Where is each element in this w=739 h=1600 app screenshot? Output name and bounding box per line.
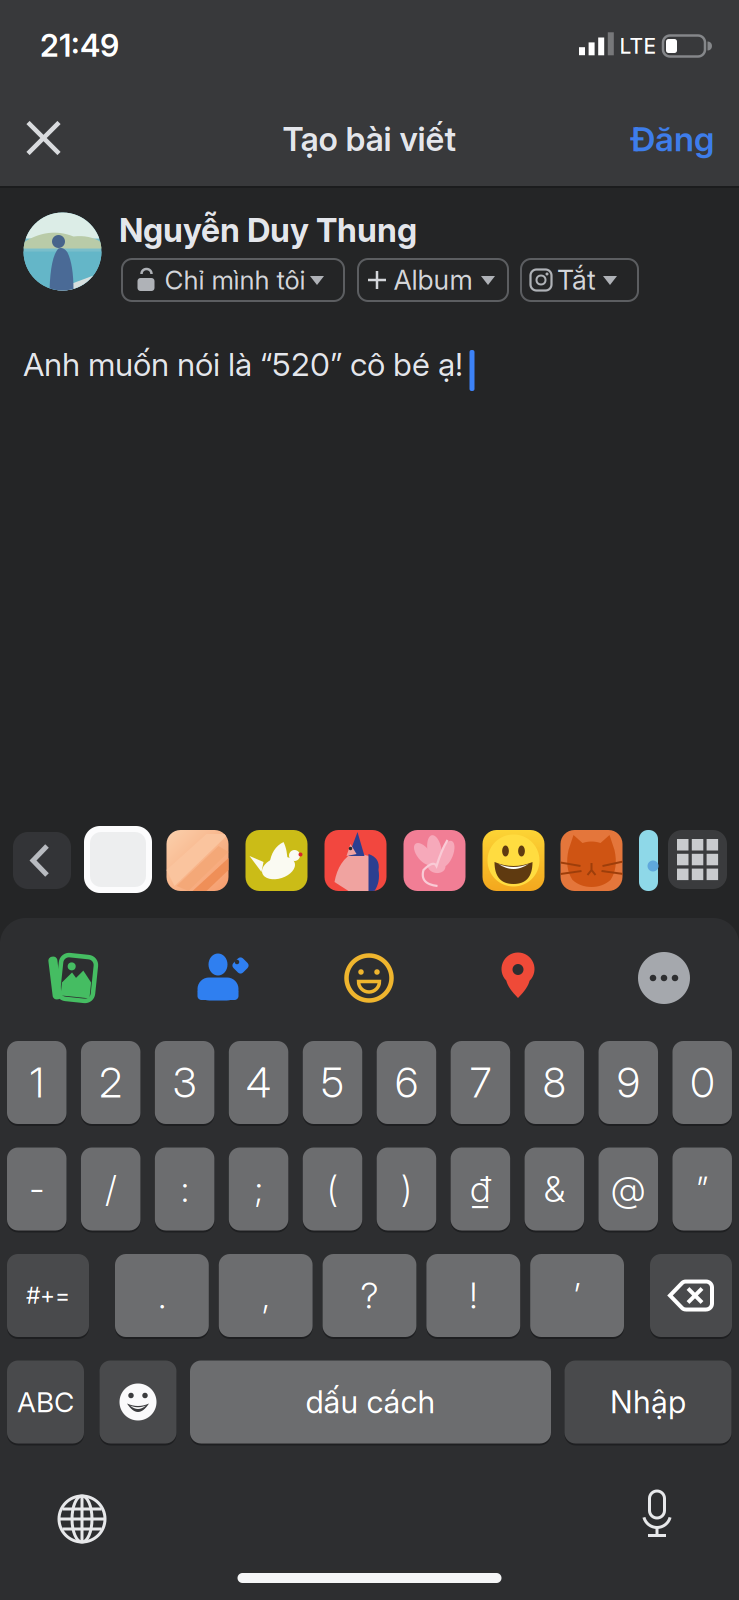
staticText: ₫ (470, 1167, 491, 1211)
button[interactable]: 3 (155, 1039, 214, 1125)
button[interactable]: . (115, 1252, 209, 1338)
button[interactable]: / (81, 1146, 140, 1232)
button[interactable]: ABC (7, 1359, 84, 1445)
button[interactable]: Feeling or activity (339, 948, 399, 1008)
staticText: & (544, 1167, 565, 1211)
staticText: 1 (30, 1058, 44, 1107)
button[interactable]: 2 (81, 1039, 140, 1125)
staticText: 21:49 (40, 27, 119, 64)
staticText: Nguyễn Duy Thung (119, 210, 417, 250)
staticText: : (181, 1167, 189, 1211)
button[interactable]: No background (84, 826, 152, 893)
button[interactable]: & (525, 1146, 584, 1232)
staticText: Đăng (630, 118, 714, 159)
staticText: Album (393, 264, 472, 296)
button[interactable]: Cat background (560, 830, 622, 891)
button[interactable]: Photo or video (42, 948, 102, 1008)
button[interactable]: More options (634, 948, 694, 1008)
staticText: Chỉ mình tôi (164, 264, 305, 296)
staticText: . (158, 1274, 166, 1317)
button[interactable]: ? (323, 1252, 416, 1338)
button[interactable]: Next keyboard (52, 1489, 112, 1549)
staticText: ? (360, 1274, 378, 1317)
button[interactable]: More backgrounds (668, 830, 727, 889)
button[interactable]: ’ (530, 1252, 624, 1338)
button[interactable]: 9 (598, 1039, 658, 1125)
button[interactable]: Album (358, 259, 508, 301)
staticText: dấu cách (305, 1383, 435, 1421)
staticText: 9 (617, 1058, 640, 1107)
button[interactable]: - (7, 1146, 66, 1232)
staticText: @ (611, 1167, 646, 1211)
button[interactable]: ₫ (451, 1146, 510, 1232)
staticText: ABC (17, 1385, 74, 1419)
staticText: 4 (246, 1058, 271, 1107)
button[interactable]: Đăng (617, 111, 727, 167)
staticText: ” (696, 1167, 708, 1211)
staticText: LTE (619, 33, 656, 59)
button[interactable]: Close (15, 110, 71, 166)
button[interactable]: Chỉ mình tôi (122, 259, 344, 301)
staticText: Tạo bài viết (282, 119, 456, 159)
button[interactable]: Tắt (521, 259, 638, 301)
staticText: 8 (543, 1058, 566, 1107)
button[interactable]: 6 (377, 1039, 436, 1125)
staticText: 5 (321, 1058, 344, 1107)
button[interactable]: Emoji (99, 1359, 176, 1445)
staticText: 0 (690, 1058, 714, 1107)
staticText: Tắt (557, 264, 596, 296)
button[interactable]: : (155, 1146, 214, 1232)
staticText: Nhập (610, 1383, 686, 1421)
staticText: Anh muốn nói là “520” cô bé ạ! (23, 345, 463, 384)
button[interactable]: @ (598, 1146, 658, 1232)
staticText: 6 (395, 1058, 418, 1107)
button[interactable]: #+= (7, 1252, 89, 1338)
button[interactable]: Dictation (627, 1486, 687, 1546)
staticText: ’ (574, 1274, 581, 1317)
button[interactable]: Delete (650, 1252, 732, 1338)
button[interactable]: ( (303, 1146, 362, 1232)
button[interactable]: dấu cách (190, 1359, 551, 1445)
button[interactable]: ) (377, 1146, 436, 1232)
button[interactable]: , (219, 1252, 313, 1338)
staticText: - (29, 1167, 44, 1211)
staticText: ; (255, 1167, 263, 1211)
staticText: ! (469, 1274, 477, 1317)
button[interactable]: 4 (229, 1039, 288, 1125)
button[interactable]: ! (426, 1252, 520, 1338)
staticText: 7 (470, 1058, 491, 1107)
button[interactable]: Pink background (403, 830, 465, 891)
button[interactable]: Check in (488, 948, 548, 1008)
button[interactable]: Nhập (564, 1359, 731, 1445)
button[interactable]: 7 (451, 1039, 510, 1125)
button[interactable]: Hide backgrounds (13, 832, 71, 889)
button[interactable]: ; (229, 1146, 288, 1232)
staticText: #+= (26, 1282, 70, 1309)
button[interactable]: Tag people (191, 948, 251, 1008)
button[interactable]: Unicorn background (324, 830, 386, 891)
staticText: , (262, 1274, 270, 1317)
button[interactable]: 1 (7, 1039, 66, 1125)
staticText: / (105, 1167, 116, 1211)
button[interactable]: Dove background (245, 830, 307, 891)
staticText: 2 (99, 1058, 122, 1107)
button[interactable]: 5 (303, 1039, 362, 1125)
button[interactable]: Orange background (166, 830, 228, 891)
button[interactable]: Emoji background (482, 830, 544, 891)
button[interactable]: 0 (672, 1039, 732, 1125)
button[interactable]: 8 (525, 1039, 584, 1125)
staticText: ( (327, 1167, 338, 1211)
button[interactable]: ” (672, 1146, 732, 1232)
staticText: 3 (173, 1058, 197, 1107)
staticText: ) (401, 1167, 412, 1211)
